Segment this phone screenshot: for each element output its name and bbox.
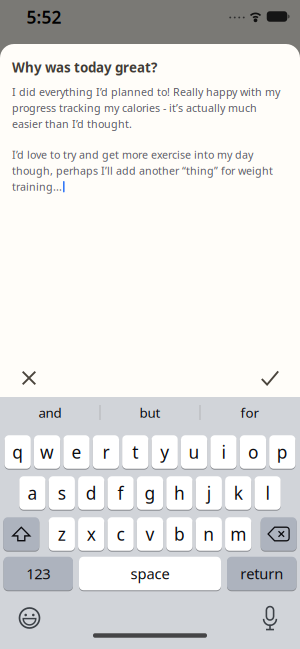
staticText: b: [174, 522, 185, 545]
staticText: Why was today great?: [12, 58, 157, 76]
staticText: for: [240, 404, 259, 421]
staticText: 5:52: [26, 5, 61, 28]
staticText: q: [12, 440, 23, 463]
staticText: y: [160, 440, 169, 463]
staticText: but: [139, 404, 160, 421]
staticText: k: [234, 481, 243, 504]
staticText: l: [266, 481, 270, 504]
staticText: f: [118, 481, 124, 504]
staticText: return: [240, 564, 283, 583]
staticText: j: [207, 481, 211, 504]
staticText: x: [87, 522, 96, 545]
staticText: a: [27, 481, 37, 504]
staticText: g: [144, 481, 155, 504]
staticText: though, perhaps I’ll add another “thing”…: [12, 164, 273, 178]
staticText: n: [203, 522, 214, 545]
staticText: o: [248, 440, 258, 463]
staticText: h: [174, 481, 185, 504]
staticText: p: [277, 440, 288, 463]
staticText: d: [86, 481, 97, 504]
staticText: z: [58, 522, 66, 545]
staticText: t: [132, 440, 138, 463]
staticText: m: [230, 522, 246, 545]
staticText: u: [189, 440, 200, 463]
staticText: w: [40, 440, 54, 463]
staticText: space: [130, 564, 169, 583]
staticText: e: [71, 440, 81, 463]
staticText: training...: [12, 180, 62, 194]
staticText: easier than I’d thought.: [12, 117, 132, 131]
staticText: v: [145, 522, 154, 545]
staticText: c: [117, 522, 125, 545]
staticText: I’d love to try and get more exercise in…: [12, 147, 253, 162]
staticText: and: [38, 404, 61, 421]
staticText: r: [102, 440, 109, 463]
staticText: I did everything I’d planned to! Really …: [12, 85, 280, 99]
staticText: s: [58, 481, 66, 504]
staticText: progress tracking my calories - it’s act…: [12, 101, 257, 115]
staticText: i: [221, 440, 225, 463]
staticText: 123: [26, 564, 50, 583]
